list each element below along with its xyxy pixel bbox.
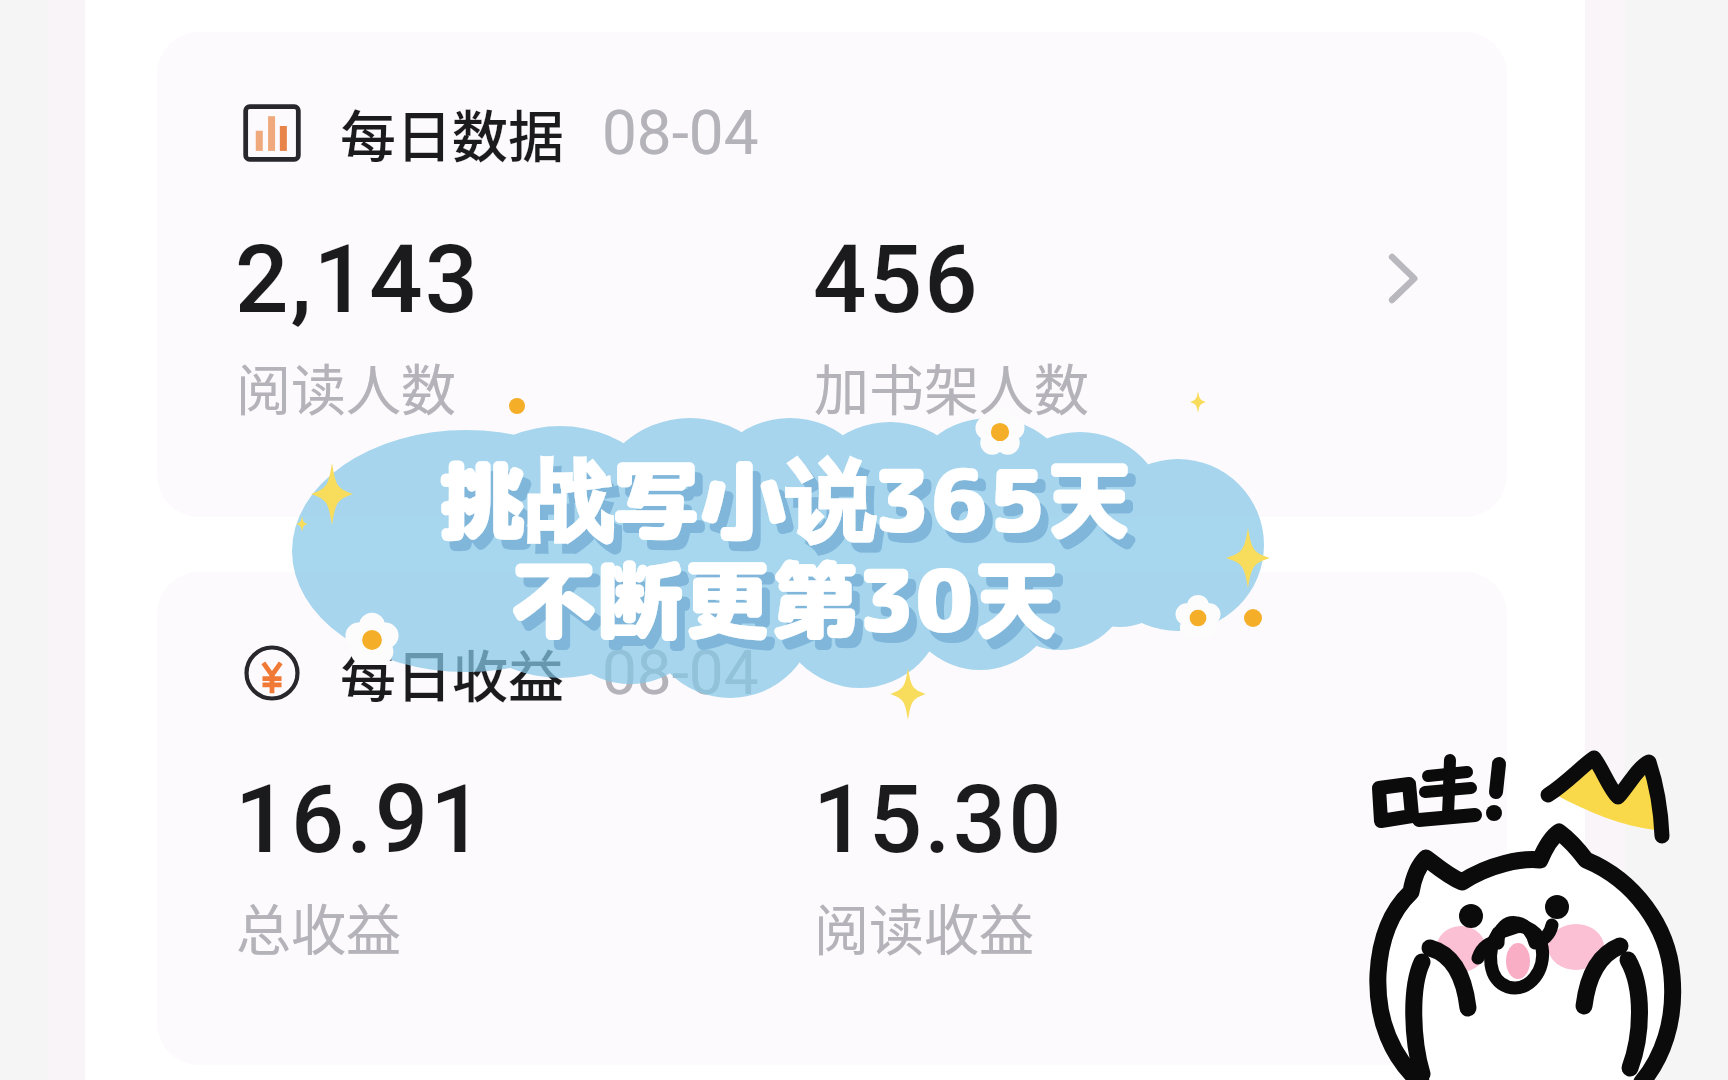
staticText: 每日收益 [340, 632, 564, 713]
staticText: 15.30 [813, 765, 1064, 875]
staticText: 2,143 [235, 225, 481, 335]
staticText: 08-04 [602, 96, 759, 169]
staticText: 16.91 [235, 765, 486, 875]
staticText: 挑战写小说365天 [446, 448, 1141, 569]
staticText: 不断更第30天 [518, 548, 1068, 669]
staticText: 加书架人数 [814, 346, 1090, 426]
staticText: 456 [813, 225, 980, 335]
staticText: 每日数据 [340, 92, 564, 173]
staticText: 挑战写小说365天 [438, 438, 1133, 559]
button[interactable]: 查看详情 [1361, 240, 1435, 314]
staticText: 阅读人数 [236, 346, 457, 426]
staticText: 08-04 [602, 636, 759, 709]
staticText: 不断更第30天 [510, 538, 1060, 659]
button[interactable]: 每日收益 [157, 572, 1507, 1065]
button[interactable]: 每日数据 [157, 32, 1507, 517]
staticText: 总收益 [236, 886, 402, 966]
staticText: 阅读收益 [814, 886, 1035, 966]
